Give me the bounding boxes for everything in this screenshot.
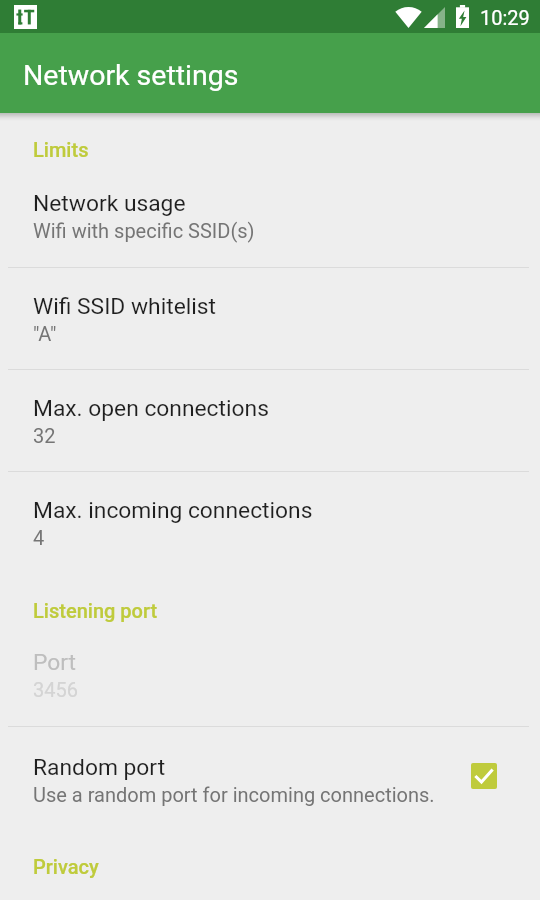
staticText: Wifi SSID whitelist bbox=[33, 293, 217, 320]
staticText: Network settings bbox=[23, 59, 239, 92]
button[interactable]: Wifi SSID whitelist bbox=[0, 268, 540, 369]
staticText: Port bbox=[33, 649, 76, 676]
staticText: 4 bbox=[33, 526, 45, 549]
other: Transmission notification bbox=[14, 5, 37, 29]
button[interactable]: Random port bbox=[0, 727, 540, 829]
staticText: 32 bbox=[33, 424, 56, 447]
staticText: Max. open connections bbox=[33, 395, 269, 422]
button[interactable]: Max. open connections bbox=[0, 370, 540, 471]
staticText: Wifi with specific SSID(s) bbox=[33, 219, 255, 242]
staticText: 3456 bbox=[33, 678, 78, 701]
button[interactable]: Max. incoming connections bbox=[0, 472, 540, 574]
staticText: Limits bbox=[33, 138, 89, 161]
staticText: 10:29 bbox=[480, 6, 530, 29]
staticText: Privacy bbox=[33, 855, 99, 878]
button[interactable]: Random port enabled bbox=[471, 763, 497, 789]
staticText: Random port bbox=[33, 754, 166, 781]
button[interactable]: Network usage bbox=[0, 165, 540, 267]
staticText: "A" bbox=[33, 322, 57, 345]
button[interactable]: Port bbox=[0, 624, 540, 726]
staticText: Listening port bbox=[33, 599, 158, 622]
staticText: Use a random port for incoming connectio… bbox=[33, 783, 435, 806]
staticText: Network usage bbox=[33, 190, 186, 217]
staticText: Max. incoming connections bbox=[33, 497, 313, 524]
